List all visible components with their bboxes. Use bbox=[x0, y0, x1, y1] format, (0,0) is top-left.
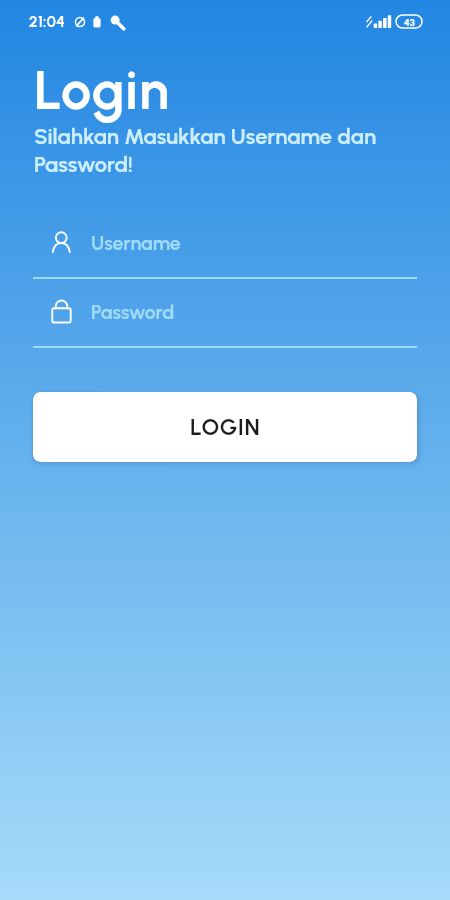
other: Search bbox=[110, 15, 125, 30]
staticText: Silahkan Masukkan Username dan Password! bbox=[34, 123, 386, 178]
staticText: 43 bbox=[404, 16, 415, 28]
staticText: Password bbox=[91, 300, 175, 323]
button[interactable]: Username bbox=[33, 221, 417, 279]
button[interactable]: LOGIN bbox=[33, 392, 417, 462]
staticText: Login bbox=[34, 58, 171, 123]
other: Do not disturb bbox=[74, 16, 86, 28]
other: Signal strength bbox=[366, 15, 390, 28]
staticText: 21:04 bbox=[29, 13, 66, 31]
button[interactable]: Password bbox=[33, 290, 417, 348]
other: Alarm bbox=[93, 16, 101, 28]
staticText: Username bbox=[91, 231, 181, 254]
staticText: LOGIN bbox=[190, 413, 261, 441]
other: Battery 43 percent bbox=[396, 15, 422, 28]
